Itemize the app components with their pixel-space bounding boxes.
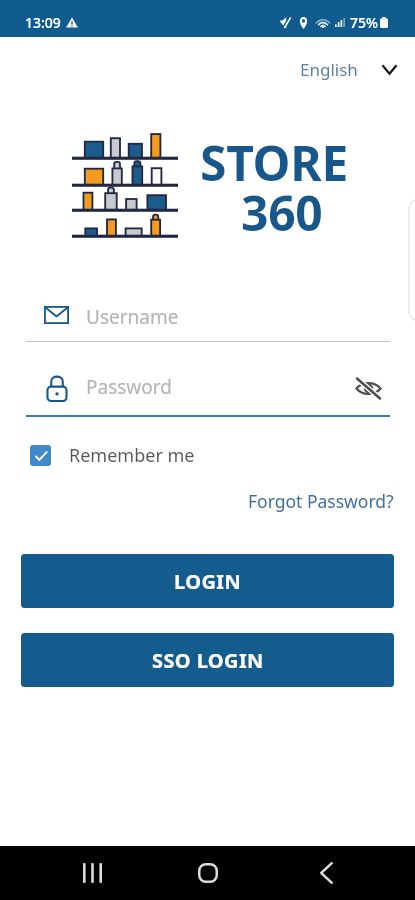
staticText: 75%	[350, 13, 378, 32]
button[interactable]: Forgot Password?	[244, 485, 398, 517]
staticText: Username	[86, 304, 179, 330]
button[interactable]: SSO LOGIN	[21, 633, 394, 687]
staticText: STORE	[200, 130, 349, 195]
staticText: English	[300, 58, 358, 81]
staticText: Password	[86, 374, 172, 400]
button[interactable]: Back	[302, 846, 350, 900]
button[interactable]: Recent apps	[68, 846, 116, 900]
button[interactable]: LOGIN	[21, 554, 394, 608]
staticText: Remember me	[69, 443, 195, 468]
staticText: 360	[241, 180, 323, 245]
staticText: LOGIN	[174, 568, 242, 595]
button[interactable]: Show password	[349, 372, 387, 404]
staticText: SSO LOGIN	[152, 647, 264, 674]
button[interactable]: Remember me	[26, 439, 199, 472]
button[interactable]: English	[300, 58, 397, 81]
button[interactable]: Home	[184, 846, 232, 900]
staticText: Forgot Password?	[248, 489, 394, 513]
staticText: 13:09	[25, 13, 61, 32]
